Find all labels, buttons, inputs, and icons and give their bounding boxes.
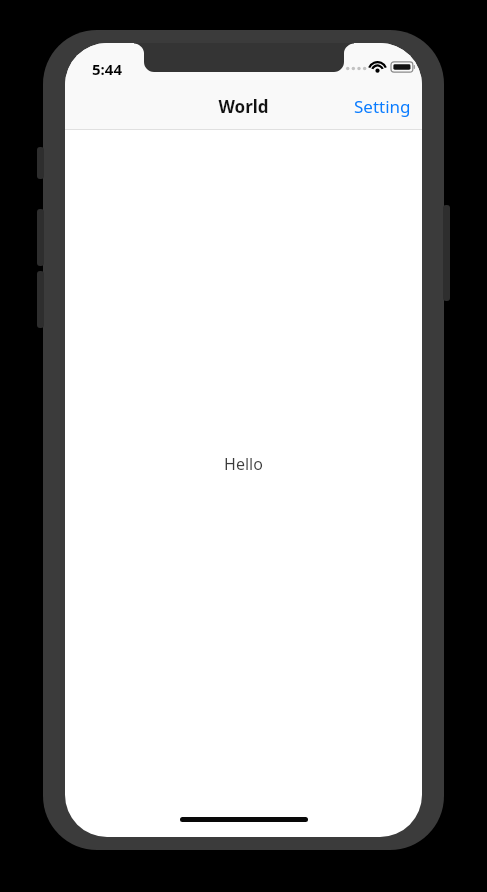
staticText: Setting (354, 95, 411, 118)
staticText: Hello (65, 453, 422, 477)
other: Cellular signal (346, 64, 368, 73)
button[interactable]: Setting (337, 90, 417, 122)
staticText: 5:44 (92, 59, 122, 79)
staticText: World (218, 95, 269, 118)
other: Wi-Fi (367, 58, 388, 74)
other: Battery (391, 60, 417, 74)
